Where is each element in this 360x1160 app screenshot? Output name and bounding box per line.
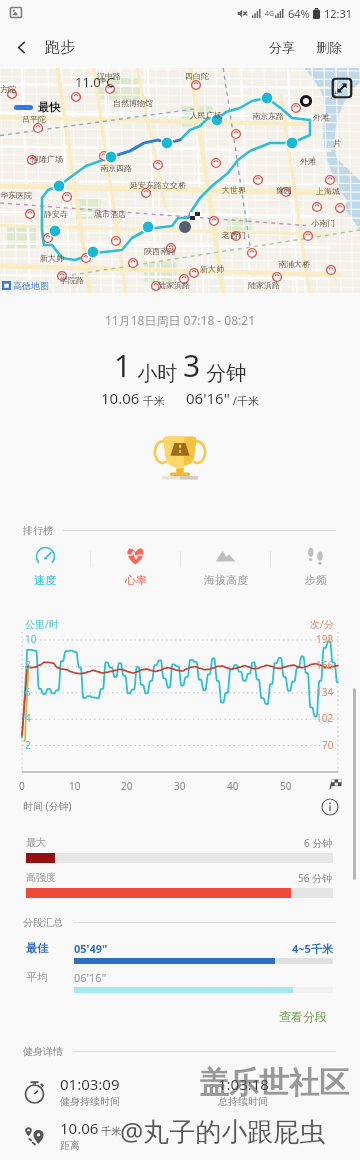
staticText: 排行榜 — [23, 524, 53, 537]
staticText: 4G — [265, 9, 275, 19]
staticText: 陕西南路 — [144, 246, 176, 256]
staticText: 四白陀 — [185, 71, 209, 81]
staticText: 56 分钟 — [298, 871, 333, 885]
staticText: 时间 (分钟) — [23, 799, 72, 813]
staticText: 64% — [288, 6, 310, 21]
staticText: 10 — [25, 632, 37, 646]
staticText: 速度 — [34, 573, 56, 585]
staticText: 06'16" — [74, 970, 107, 985]
staticText: 删除 — [316, 39, 342, 55]
staticText: 南京四路 — [100, 163, 132, 173]
staticText: 千米 — [99, 1124, 122, 1138]
staticText: 跑步 — [45, 38, 75, 57]
staticText: 分享 — [269, 39, 295, 55]
staticText: 6 — [25, 685, 31, 699]
staticText: 总持续时间 — [218, 1095, 268, 1108]
staticText: 0 — [19, 779, 25, 793]
staticText: 1 — [114, 345, 132, 386]
staticText: 20 — [121, 779, 133, 793]
staticText: 06'16" — [186, 388, 230, 408]
staticText: 10 — [69, 779, 81, 793]
staticText: 新大帅 — [40, 253, 64, 263]
button[interactable]: Info — [321, 798, 339, 816]
staticText: 40 — [227, 779, 239, 793]
button[interactable]: 速度 — [0, 543, 90, 585]
staticText: 恒隆广场 — [31, 154, 63, 164]
staticText: 陆家浜路 — [248, 280, 280, 290]
staticText: 11.0°C — [75, 73, 115, 91]
staticText: 分段汇总 — [23, 916, 63, 929]
staticText: 134 — [316, 685, 334, 699]
staticText: 豫园 — [276, 185, 292, 195]
staticText: 166 — [316, 658, 334, 672]
staticText: 查看分段 — [279, 1009, 327, 1024]
staticText: 健身详情 — [23, 1045, 63, 1058]
staticText: 心率 — [125, 573, 147, 585]
button[interactable]: 步频 — [271, 543, 360, 585]
staticText: 自然博物馆 — [113, 98, 153, 108]
staticText: 小南门 — [311, 218, 335, 228]
staticText: 3 — [183, 345, 201, 386]
staticText: 最大 — [26, 836, 46, 849]
staticText: 老西门 — [222, 230, 246, 240]
staticText: 05'49" — [74, 941, 108, 956]
staticText: 102 — [316, 711, 334, 725]
staticText: 距离 — [60, 1139, 80, 1152]
staticText: 外滩 — [313, 112, 329, 122]
staticText: 城市酒店 — [94, 209, 126, 219]
staticText: 延安东路立交桥 — [130, 180, 186, 190]
staticText: 70 — [322, 738, 334, 752]
staticText: 静安寺 — [44, 209, 68, 219]
staticText: 高强度 — [26, 871, 56, 884]
staticText: 盖乐世社区 — [199, 1064, 349, 1102]
staticText: 陆家浜路 — [158, 280, 190, 290]
staticText: 4 — [25, 711, 31, 725]
staticText: 50 — [280, 779, 292, 793]
staticText: 片 — [330, 90, 338, 100]
staticText: 6 分钟 — [304, 836, 333, 850]
other: Back — [14, 40, 29, 55]
staticText: 平均 — [26, 970, 48, 984]
staticText: 01:03:09 — [60, 1074, 120, 1094]
staticText: 南浦大桥 — [278, 259, 310, 269]
staticText: 海拔高度 — [204, 573, 248, 585]
staticText: 华东医院 — [0, 190, 32, 200]
staticText: 1:03:18 — [218, 1074, 269, 1094]
staticText: 公里/时 — [25, 617, 59, 631]
staticText: 方陀 — [0, 84, 16, 94]
staticText: 最佳 — [26, 941, 48, 955]
staticText: 学院路 — [60, 275, 84, 285]
staticText: 最快 — [38, 100, 60, 114]
staticText: 南京东路 — [252, 111, 284, 121]
staticText: 高德地图 — [13, 280, 49, 291]
button[interactable]: Expand map — [331, 77, 353, 99]
button[interactable]: Finish — [329, 777, 342, 790]
staticText: 千米 — [140, 393, 165, 408]
staticText: 10.06 — [101, 388, 140, 408]
staticText: 8 — [25, 658, 31, 672]
staticText: @丸子的小跟屁虫 — [120, 1113, 326, 1149]
staticText: 大世界 — [222, 185, 246, 195]
staticText: 30 — [174, 779, 186, 793]
staticText: 12:31 — [324, 6, 353, 21]
staticText: 步频 — [305, 573, 327, 585]
staticText: 片 — [333, 138, 341, 148]
staticText: 健身持续时间 — [60, 1095, 120, 1108]
staticText: 外滩 — [300, 156, 316, 166]
staticText: 人民广场 — [190, 110, 222, 120]
button[interactable]: Back — [0, 29, 85, 66]
button[interactable]: 海拔高度 — [181, 543, 270, 585]
button[interactable]: 心率 — [91, 543, 180, 585]
staticText: 198 — [316, 632, 334, 646]
staticText: /千米 — [230, 393, 259, 408]
staticText: 10.06 — [60, 1118, 99, 1138]
staticText: 11月18日周日 07:18 - 08:21 — [105, 312, 256, 328]
staticText: 分钟 — [201, 359, 247, 386]
staticText: 4~5千米 — [292, 941, 333, 956]
staticText: 上海城 — [316, 186, 340, 196]
button[interactable]: 删除 — [309, 30, 349, 64]
staticText: 新大帅 — [200, 264, 224, 274]
button[interactable]: 查看分段 — [275, 1005, 331, 1028]
button[interactable]: 分享 — [262, 30, 302, 64]
staticText: 次/分 — [310, 617, 334, 631]
